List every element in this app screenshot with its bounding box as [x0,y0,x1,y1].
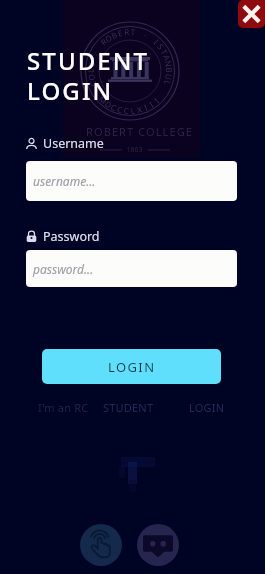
button[interactable]: Close [238,0,265,28]
staticText: password... [33,261,94,277]
button[interactable]: Touch mode [80,524,122,566]
staticText: LOGIN [108,358,156,376]
staticText: Password [43,228,100,245]
staticText: Username [43,135,104,152]
staticText: username... [33,173,96,189]
button[interactable]: LOGIN [189,400,225,415]
staticText: STUDENT LOGIN [27,44,150,107]
button[interactable]: VR mode [137,524,179,566]
button[interactable]: STUDENT [103,400,154,415]
button[interactable]: password... [26,250,237,287]
button[interactable]: I'm an RC [38,400,89,415]
button[interactable]: username... [26,161,237,201]
button[interactable]: LOGIN [42,349,221,384]
